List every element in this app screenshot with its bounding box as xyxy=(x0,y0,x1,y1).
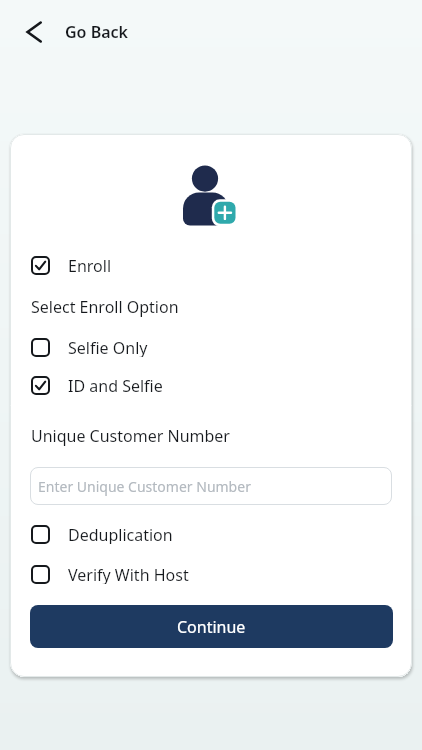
button[interactable]: Verify With Host xyxy=(31,564,189,584)
staticText: Continue xyxy=(177,616,246,638)
button[interactable]: Enroll xyxy=(31,255,112,275)
button[interactable]: Selfie Only xyxy=(31,337,148,357)
button[interactable]: Enter Unique Customer Number xyxy=(30,467,392,505)
button[interactable]: Deduplication xyxy=(31,524,173,544)
staticText: Go Back xyxy=(65,21,128,43)
staticText: Selfie Only xyxy=(68,337,148,357)
staticText: Enter Unique Customer Number xyxy=(38,477,251,496)
staticText: Verify With Host xyxy=(68,564,189,584)
button[interactable]: Go Back xyxy=(18,14,136,50)
staticText: Unique Customer Number xyxy=(31,425,230,447)
staticText: ID and Selfie xyxy=(68,375,163,395)
button[interactable]: Continue xyxy=(30,605,393,648)
staticText: Enroll xyxy=(68,255,112,275)
staticText: Select Enroll Option xyxy=(31,296,179,318)
button[interactable]: ID and Selfie xyxy=(31,375,163,395)
staticText: Deduplication xyxy=(68,524,173,544)
